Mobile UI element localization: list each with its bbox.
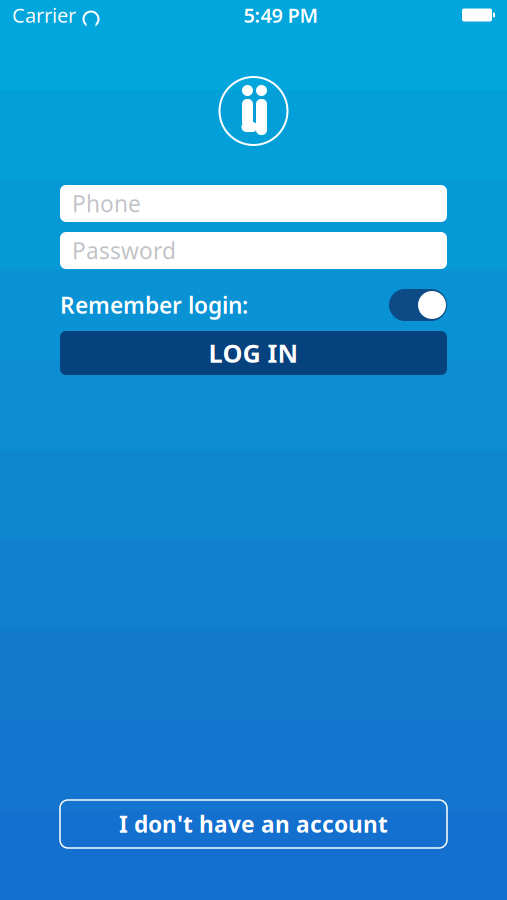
staticText: Password [72, 235, 176, 265]
staticText: I don't have an account [119, 809, 388, 839]
staticText: LOG IN [208, 336, 298, 370]
staticText: Carrier [12, 2, 76, 28]
button[interactable]: Remember login [60, 285, 447, 325]
button[interactable]: LOG IN [60, 331, 447, 375]
button[interactable]: I don't have an account [60, 800, 447, 848]
staticText: 5:49 PM [243, 2, 318, 28]
staticText: Remember login: [60, 290, 248, 320]
staticText: Phone [72, 188, 141, 218]
